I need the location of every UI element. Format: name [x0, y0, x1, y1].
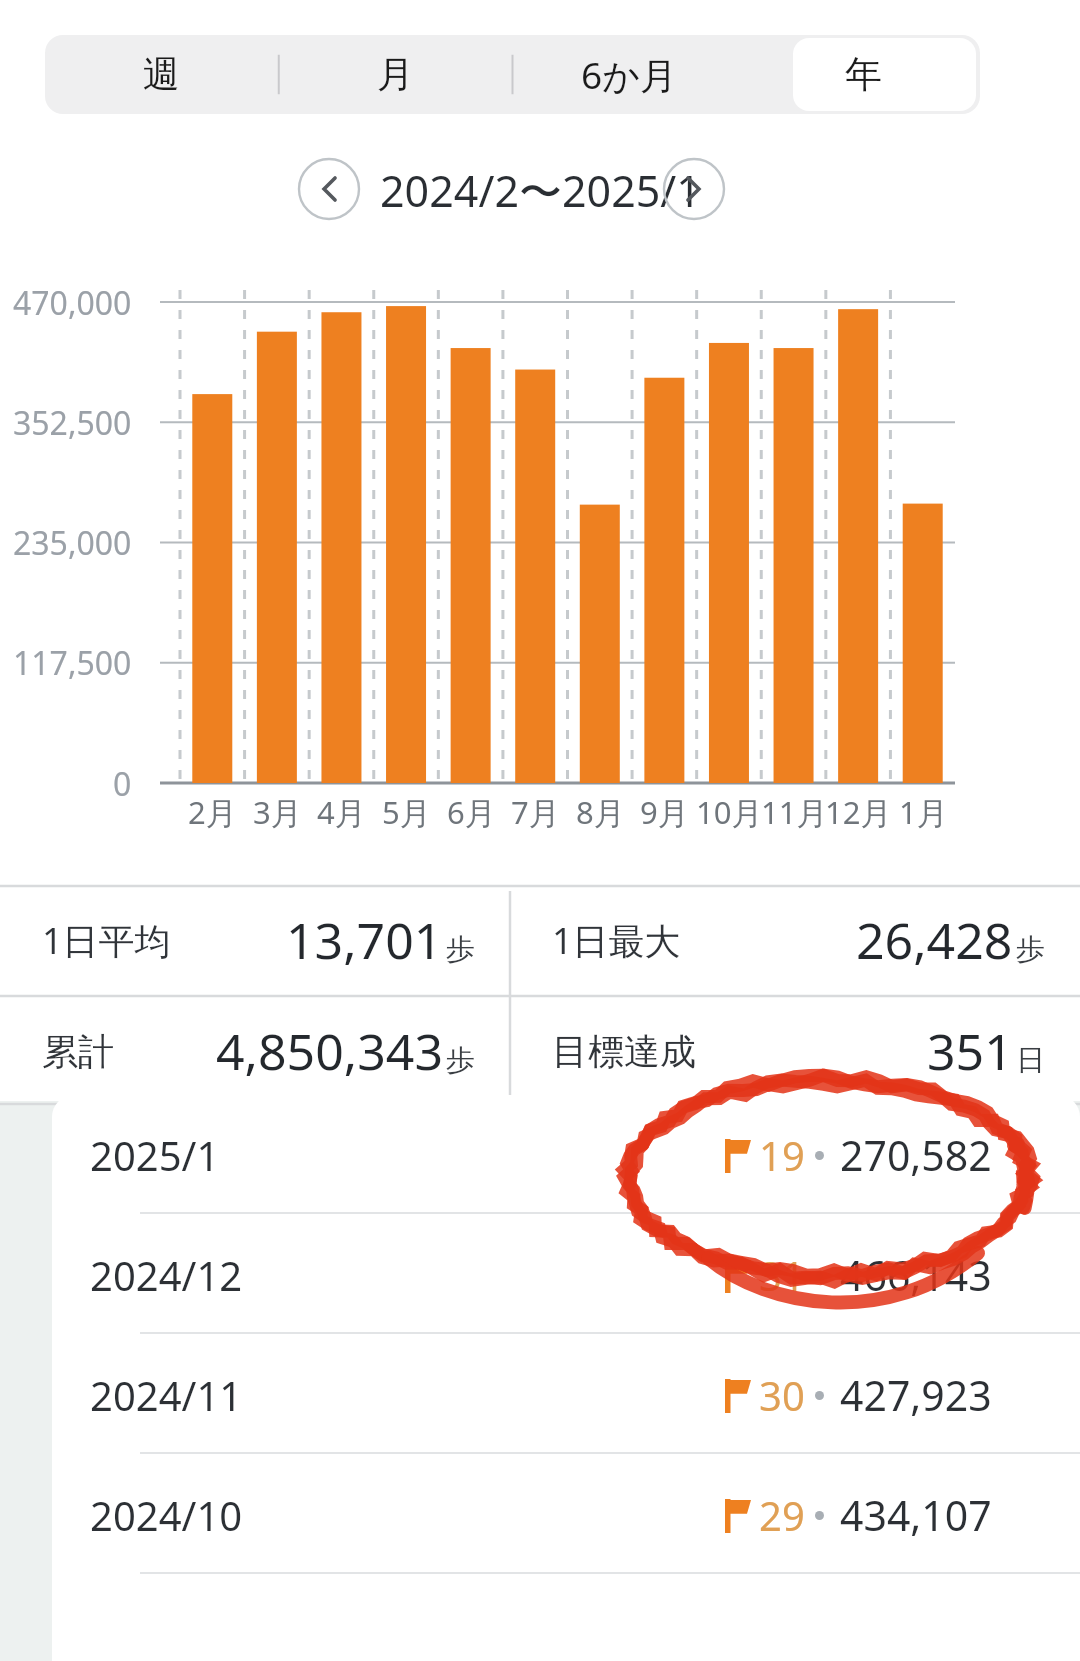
staticText: 2025/1 [90, 1128, 220, 1182]
staticText: 8月 [576, 791, 625, 833]
staticText: 4,850,343 [216, 1017, 443, 1085]
staticText: 月 [377, 51, 414, 98]
staticText: 1日平均 [42, 916, 171, 965]
staticText: 12月 [825, 791, 892, 833]
staticText: 年 [845, 51, 882, 98]
button[interactable]: 累計 [0, 996, 510, 1106]
staticText: 10月 [696, 791, 763, 833]
button[interactable]: 1日平均 [0, 885, 510, 995]
staticText: 日 [1016, 1042, 1045, 1079]
staticText: 1日最大 [552, 916, 681, 965]
staticText: 0 [113, 762, 132, 806]
button[interactable]: 2025/1 [52, 1095, 1080, 1215]
staticText: 6月 [447, 791, 496, 833]
staticText: 5月 [382, 791, 431, 833]
staticText: 累計 [42, 1029, 114, 1074]
staticText: 11月 [761, 791, 828, 833]
button[interactable]: 年 [746, 35, 980, 114]
staticText: 466,143 [840, 1247, 992, 1303]
staticText: 歩 [446, 1042, 475, 1079]
staticText: 352,500 [13, 401, 132, 445]
staticText: 29 [759, 1488, 805, 1542]
staticText: 19 [759, 1128, 805, 1182]
staticText: 351 [927, 1017, 1013, 1085]
staticText: 6か月 [581, 49, 678, 100]
staticText: 9月 [640, 791, 689, 833]
staticText: 427,923 [840, 1367, 992, 1423]
staticText: 3月 [253, 791, 302, 833]
staticText: 26,428 [856, 906, 1013, 974]
button[interactable]: 月 [278, 35, 512, 114]
staticText: 470,000 [13, 281, 132, 325]
staticText: 歩 [446, 931, 475, 968]
button[interactable]: Previous period [298, 158, 360, 220]
staticText: 7月 [511, 791, 560, 833]
staticText: 2024/10 [90, 1488, 243, 1542]
button[interactable]: 1日最大 [510, 885, 1080, 995]
staticText: 4月 [317, 791, 366, 833]
button[interactable]: 目標達成 [510, 996, 1080, 1106]
button[interactable]: 2024/10 [52, 1455, 1080, 1575]
staticText: 13,701 [286, 906, 443, 974]
staticText: 2024/11 [90, 1368, 243, 1422]
staticText: 235,000 [13, 521, 132, 565]
staticText: 1月 [899, 791, 948, 833]
button[interactable]: Next period [663, 158, 725, 220]
staticText: 週 [143, 51, 180, 98]
staticText: 31 [759, 1248, 805, 1302]
button[interactable]: 週 [45, 35, 278, 114]
staticText: 30 [759, 1368, 805, 1422]
staticText: 434,107 [840, 1487, 992, 1543]
button[interactable]: 2024/11 [52, 1335, 1080, 1455]
staticText: 2024/2〜2025/1 [380, 161, 701, 220]
staticText: 270,582 [840, 1127, 992, 1183]
staticText: 2024/12 [90, 1248, 243, 1302]
staticText: 目標達成 [552, 1029, 696, 1074]
button[interactable]: 6か月 [512, 35, 746, 114]
staticText: 2月 [188, 791, 237, 833]
staticText: 歩 [1016, 931, 1045, 968]
button[interactable]: 2024/12 [52, 1215, 1080, 1335]
staticText: 117,500 [13, 641, 132, 685]
